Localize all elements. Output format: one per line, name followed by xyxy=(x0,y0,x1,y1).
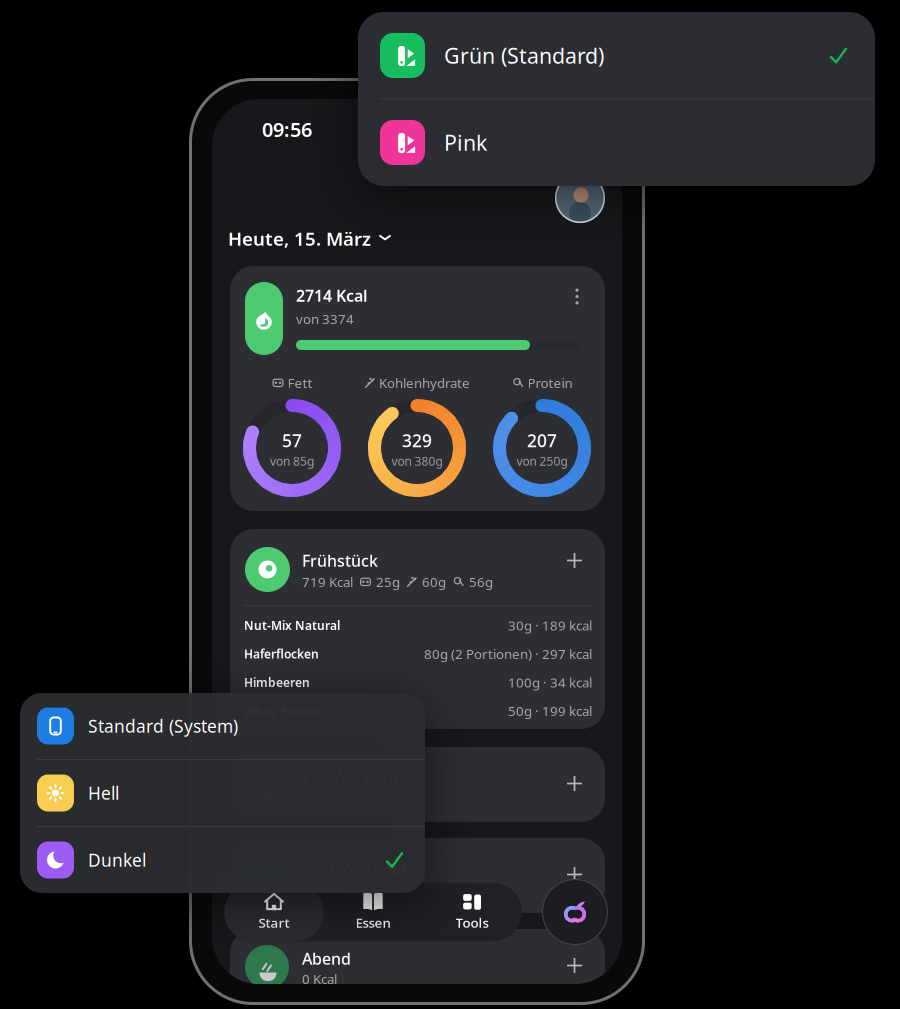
staticText: 57 xyxy=(282,429,302,452)
staticText: 60g xyxy=(422,573,446,591)
button[interactable]: Start xyxy=(224,882,323,941)
button[interactable]: Frühstück hinzufügen xyxy=(567,553,582,568)
button[interactable]: Abend hinzufügen xyxy=(567,958,582,973)
button[interactable]: KI-Assistent xyxy=(542,879,608,945)
staticText: von 85g xyxy=(270,453,314,469)
button[interactable]: Tools xyxy=(422,882,521,941)
button[interactable]: Profil xyxy=(555,173,605,223)
button[interactable]: Heute, 15. März xyxy=(228,226,391,251)
staticText: 50g · 199 kcal xyxy=(508,702,592,720)
button[interactable]: Standard (System) xyxy=(20,693,425,759)
staticText: 329 xyxy=(402,429,432,452)
staticText: Himbeeren xyxy=(244,674,310,690)
staticText: Grün (Standard) xyxy=(444,41,604,70)
staticText: Pink xyxy=(444,128,487,157)
staticText: Abend xyxy=(302,948,351,969)
button[interactable]: Pink xyxy=(358,99,875,185)
button[interactable]: Pre-Workout hinzufügen xyxy=(567,776,582,791)
staticText: 0 Kcal xyxy=(302,879,337,897)
button[interactable]: Grün (Standard) xyxy=(358,12,875,98)
staticText: Kohlenhydrate xyxy=(379,374,470,392)
staticText: 207 xyxy=(527,429,557,452)
staticText: Nut-Mix Natural xyxy=(244,617,340,633)
staticText: Frühstück xyxy=(302,550,378,571)
staticText: 80g (2 Portionen) · 297 kcal xyxy=(424,645,592,663)
button[interactable]: Himbeeren xyxy=(244,668,592,696)
staticText: 0 Kcal xyxy=(302,970,337,988)
button[interactable]: Hell xyxy=(20,760,425,826)
staticText: von 380g xyxy=(391,453,442,469)
staticText: 719 Kcal xyxy=(302,573,353,591)
staticText: Haferflocken xyxy=(244,646,319,662)
button[interactable]: Mehr xyxy=(575,288,579,305)
staticText: von 3374 xyxy=(296,310,354,328)
button[interactable]: Haferflocken xyxy=(244,639,592,668)
staticText: Protein xyxy=(527,374,572,392)
button[interactable]: Post-Workout hinzufügen xyxy=(567,867,582,882)
staticText: Start xyxy=(258,914,289,931)
staticText: Standard (System) xyxy=(88,714,238,737)
staticText: Dunkel xyxy=(88,848,146,871)
staticText: Post-Workout xyxy=(302,857,408,878)
staticText: 25g xyxy=(376,573,400,591)
staticText: Essen xyxy=(355,914,390,931)
staticText: Heute, 15. März xyxy=(228,226,371,251)
button[interactable]: Whey Protein xyxy=(244,696,592,725)
staticText: 2714 Kcal xyxy=(296,285,368,306)
staticText: 100g · 34 kcal xyxy=(508,673,592,691)
staticText: Tools xyxy=(455,914,488,931)
button[interactable]: Nut-Mix Natural xyxy=(244,611,592,639)
staticText: Hell xyxy=(88,781,119,804)
staticText: 30g · 189 kcal xyxy=(508,616,592,634)
staticText: 09:56 xyxy=(262,116,312,143)
staticText: von 250g xyxy=(516,453,567,469)
staticText: 56g xyxy=(469,573,493,591)
button[interactable]: Essen xyxy=(323,882,422,941)
button[interactable]: Dunkel xyxy=(20,827,425,893)
staticText: Fett xyxy=(287,374,312,392)
